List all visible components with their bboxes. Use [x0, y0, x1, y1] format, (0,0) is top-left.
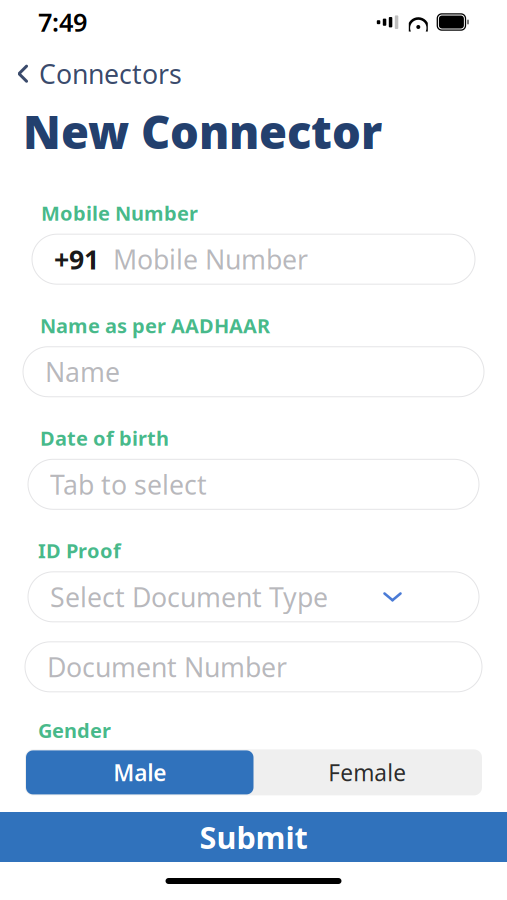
staticText: Document Number [47, 649, 287, 684]
staticText: Name [45, 354, 120, 389]
staticText: Tab to select [50, 467, 207, 502]
button[interactable]: Submit [0, 812, 507, 862]
staticText: Male [113, 757, 166, 787]
staticText: ID Proof [38, 537, 121, 564]
button[interactable]: Connectors [0, 44, 507, 95]
button[interactable]: Select Document Type [28, 572, 479, 622]
staticText: Female [328, 757, 406, 787]
staticText: +91 [54, 241, 99, 277]
button[interactable]: Document Number [25, 642, 482, 692]
staticText: Connectors [39, 56, 182, 91]
staticText: Submit [199, 817, 307, 857]
button[interactable]: Male [26, 750, 253, 794]
staticText: Select Document Type [50, 579, 328, 614]
button[interactable]: Female [253, 750, 481, 794]
button[interactable]: +91 [32, 234, 475, 284]
staticText: Date of birth [40, 425, 169, 451]
staticText: Mobile Number [41, 200, 198, 226]
button[interactable]: Tab to select [28, 459, 479, 509]
staticText: New Connector [23, 101, 382, 162]
staticText: Name as per AADHAAR [40, 312, 270, 339]
staticText: 7:49 [38, 5, 87, 39]
staticText: Mobile Number [113, 241, 308, 277]
staticText: Gender [38, 717, 111, 743]
button[interactable]: Name [23, 347, 484, 397]
